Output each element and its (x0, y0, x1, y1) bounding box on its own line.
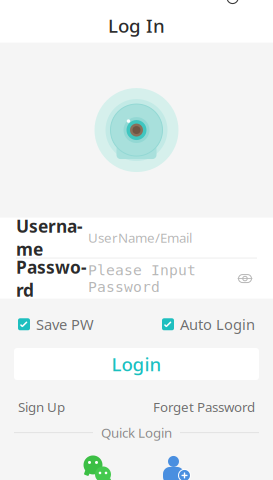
button[interactable]: Login (14, 348, 259, 380)
button[interactable]: Log in with account (153, 449, 197, 480)
staticText: Forget Password (153, 398, 255, 416)
button[interactable]: Forget Password (153, 398, 255, 416)
button[interactable]: Auto Login (162, 315, 255, 334)
staticText: Please Input Password (88, 262, 196, 295)
staticText: Password (16, 255, 87, 301)
button[interactable]: Log in with WeChat (75, 449, 119, 480)
button[interactable]: Save PW (18, 315, 94, 334)
staticText: Save PW (36, 315, 94, 334)
staticText: Log In (108, 13, 165, 38)
staticText: Username (16, 214, 83, 260)
staticText: Auto Login (180, 315, 255, 334)
button[interactable]: Sign Up (18, 398, 65, 416)
staticText: Login (111, 352, 161, 376)
staticText: UserName/Email (88, 229, 192, 246)
staticText: Sign Up (18, 398, 65, 416)
staticText: Quick Login (101, 424, 172, 441)
button[interactable]: Show password (233, 267, 257, 291)
